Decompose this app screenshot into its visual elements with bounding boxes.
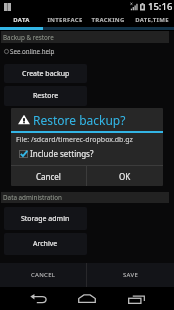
staticText: See online help <box>10 47 55 55</box>
button[interactable]: Storage admin <box>4 207 87 230</box>
button[interactable]: Back <box>18 287 58 310</box>
button[interactable]: DATE,TIME <box>130 13 174 27</box>
button[interactable]: Include settings? <box>19 148 94 159</box>
staticText: SAVE <box>123 271 139 279</box>
button[interactable]: DATA <box>0 13 43 27</box>
staticText: INTERFACE <box>47 16 83 24</box>
button[interactable]: SAVE <box>87 263 174 287</box>
staticText: Cancel <box>36 171 61 182</box>
staticText: Restore <box>33 91 59 101</box>
staticText: Backup & restore <box>3 33 54 42</box>
button[interactable]: INTERFACE <box>43 13 86 27</box>
button[interactable]: Recents <box>116 287 156 310</box>
staticText: DATA <box>13 16 30 24</box>
button[interactable]: Archive <box>4 233 87 255</box>
button[interactable]: See online help <box>4 47 55 55</box>
staticText: Archive <box>33 239 58 249</box>
staticText: Create backup <box>22 69 70 79</box>
staticText: OK <box>119 171 131 182</box>
button[interactable]: Restore <box>4 86 87 106</box>
button[interactable]: TRACKING <box>86 13 130 27</box>
staticText: Restore backup? <box>33 112 126 128</box>
button[interactable]: OK <box>87 166 163 186</box>
staticText: DATE,TIME <box>135 16 169 24</box>
staticText: File: /sdcard/timerec-dropbox.db.gz <box>16 135 133 145</box>
button[interactable]: Create backup <box>4 64 87 83</box>
staticText: CANCEL <box>31 271 56 279</box>
staticText: 15:16 <box>148 0 173 13</box>
staticText: Storage admin <box>21 214 70 224</box>
button[interactable]: CANCEL <box>0 263 86 287</box>
button[interactable]: Home <box>67 287 107 310</box>
staticText: TRACKING <box>91 16 125 24</box>
staticText: Include settings? <box>30 148 94 159</box>
staticText: Data administration <box>3 193 62 202</box>
button[interactable]: Cancel <box>11 166 86 186</box>
